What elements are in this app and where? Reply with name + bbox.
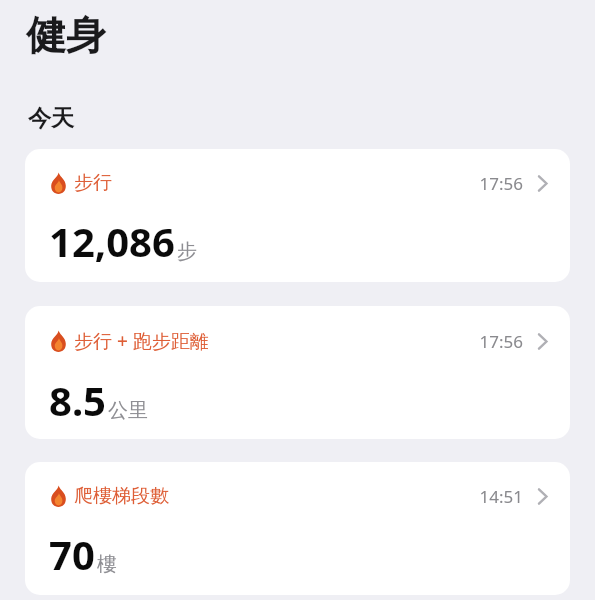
button[interactable]: Activity — [25, 306, 570, 439]
button[interactable]: Activity — [25, 149, 570, 282]
staticText: 樓 — [97, 552, 117, 577]
other: Activity — [50, 330, 67, 352]
staticText: 12,086 — [49, 214, 175, 268]
other: More details — [537, 332, 548, 351]
staticText: 步行 — [74, 171, 112, 195]
staticText: 公里 — [108, 398, 148, 423]
other: More details — [537, 174, 548, 193]
staticText: 17:56 — [479, 330, 523, 353]
staticText: 步行 + 跑步距離 — [74, 328, 209, 354]
staticText: 今天 — [28, 104, 74, 133]
staticText: 14:51 — [479, 485, 523, 508]
other: More details — [537, 487, 548, 506]
staticText: 70 — [49, 527, 95, 581]
staticText: 步 — [177, 239, 197, 264]
other: Activity — [50, 485, 67, 507]
staticText: 健身 — [26, 10, 106, 60]
staticText: 8.5 — [49, 373, 106, 427]
button[interactable]: Activity — [25, 462, 570, 595]
staticText: 17:56 — [479, 172, 523, 195]
staticText: 爬樓梯段數 — [74, 484, 169, 508]
other: Activity — [50, 172, 67, 194]
